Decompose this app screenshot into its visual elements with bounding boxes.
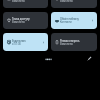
staticText: Вимкнено xyxy=(12,20,25,24)
button[interactable]: Pages xyxy=(43,55,54,64)
button[interactable]: Будильник xyxy=(3,33,48,51)
staticText: Контакти xyxy=(60,20,72,24)
button[interactable]: Wi-Fi xyxy=(51,0,97,8)
button[interactable]: Edit tiles xyxy=(85,54,94,63)
staticText: Вимкнено xyxy=(12,0,25,3)
button[interactable]: Режим енергоз. xyxy=(51,33,97,51)
staticText: Обмін поблизу xyxy=(60,17,79,20)
button[interactable]: Обмін поблизу xyxy=(51,12,97,29)
staticText: Вимкнено xyxy=(60,42,73,46)
staticText: Точка доступу xyxy=(12,17,30,20)
button[interactable]: Режим польоту xyxy=(3,0,48,8)
staticText: Будильник xyxy=(12,39,26,42)
staticText: о 07:00 xyxy=(12,42,21,46)
button[interactable]: Точка доступу xyxy=(3,12,48,29)
staticText: Режим енергоз. xyxy=(60,39,80,42)
staticText: Вимкнено xyxy=(60,0,73,3)
